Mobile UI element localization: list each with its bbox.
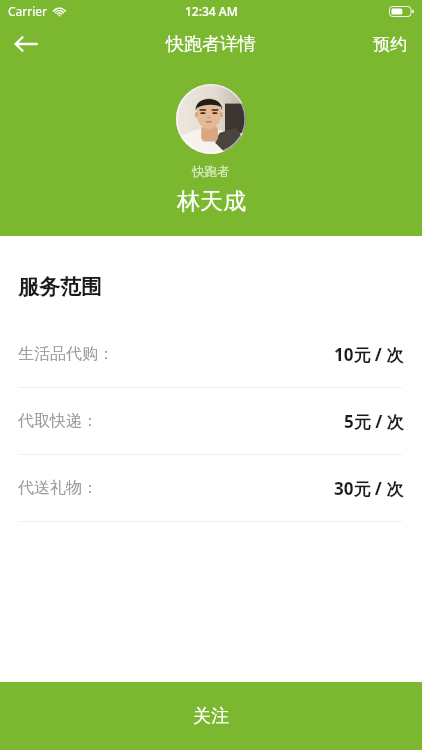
staticText: 快跑者 [192,164,230,180]
staticText: 30元 / 次 [334,477,404,500]
staticText: 服务范围 [18,274,102,300]
staticText: 代送礼物： [18,478,98,498]
staticText: 生活品代购： [18,344,114,364]
staticText: 代取快递： [18,411,98,431]
staticText: 关注 [193,705,229,728]
button[interactable]: 代送礼物： [0,455,422,521]
button[interactable]: Avatar [176,84,246,154]
staticText: 12:34 AM [185,3,238,19]
staticText: Carrier [8,3,48,19]
staticText: 5元 / 次 [344,410,404,433]
button[interactable]: 关注 [0,682,422,750]
button[interactable]: 预约 [358,22,422,66]
button[interactable]: 生活品代购： [0,321,422,387]
staticText: 快跑者详情 [166,33,256,56]
staticText: 预约 [373,34,407,55]
button[interactable]: 代取快递： [0,388,422,454]
staticText: 林天成 [177,187,246,216]
button[interactable]: Back [0,22,52,66]
staticText: 10元 / 次 [334,343,404,366]
